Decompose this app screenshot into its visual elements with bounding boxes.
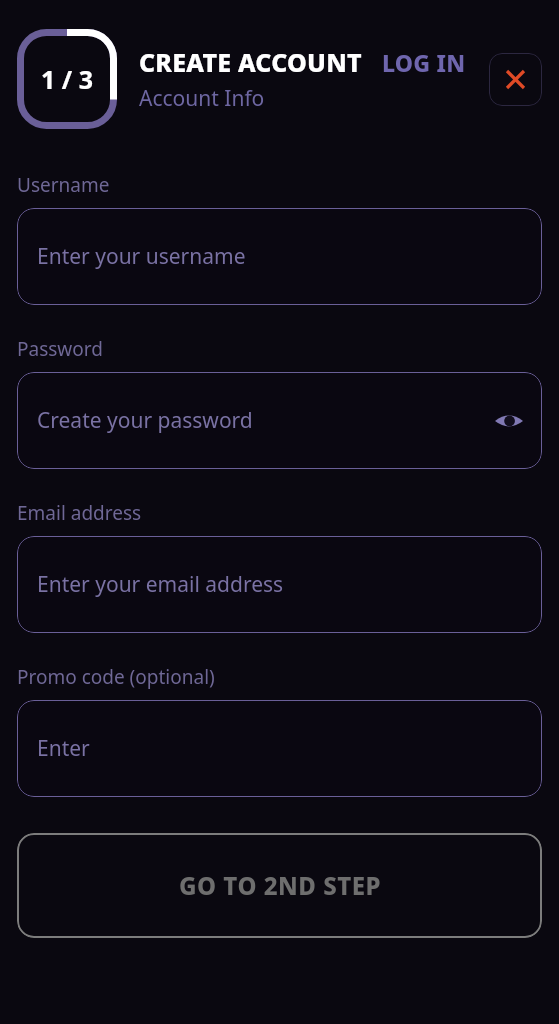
button[interactable]: Close <box>489 53 542 106</box>
button[interactable]: Enter <box>17 700 542 797</box>
staticText: GO TO 2ND STEP <box>179 869 381 902</box>
staticText: Password <box>17 336 103 362</box>
staticText: Create your password <box>37 406 492 435</box>
button[interactable]: Show password <box>492 404 526 438</box>
staticText: Username <box>17 172 110 198</box>
staticText: Email address <box>17 500 142 526</box>
button[interactable]: LOG IN <box>382 47 466 78</box>
button[interactable]: Enter your email address <box>17 536 542 633</box>
button[interactable]: GO TO 2ND STEP <box>17 833 542 938</box>
staticText: 1 / 3 <box>41 62 93 96</box>
staticText: LOG IN <box>382 47 466 78</box>
button[interactable]: Create your password <box>17 372 542 469</box>
staticText: Enter your email address <box>37 570 526 599</box>
staticText: Enter <box>37 734 526 763</box>
button[interactable]: Enter your username <box>17 208 542 305</box>
staticText: CREATE ACCOUNT <box>139 45 362 79</box>
staticText: Enter your username <box>37 242 526 271</box>
staticText: Promo code (optional) <box>17 664 215 690</box>
staticText: Account Info <box>139 84 265 113</box>
